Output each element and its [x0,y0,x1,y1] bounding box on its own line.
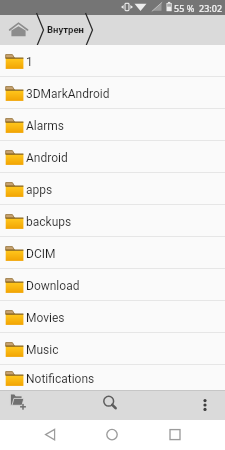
button[interactable]: Android [0,141,225,172]
staticText: 3DMarkAndroid [26,87,110,101]
staticText: Внутрен [47,24,84,35]
button[interactable]: Home [99,420,125,450]
button[interactable]: Back [37,420,63,450]
staticText: 55 % 23:02 [174,2,223,14]
staticText: 1 [26,55,33,69]
button[interactable]: Recent apps [162,420,188,450]
button[interactable]: 1 [0,45,225,76]
button[interactable]: Music [0,333,225,364]
button[interactable]: Search [96,390,124,420]
button[interactable]: More options [192,390,218,420]
staticText: Notifications [26,372,95,386]
button[interactable]: 3DMarkAndroid [0,77,225,108]
staticText: apps [26,183,53,197]
button[interactable]: apps [0,173,225,204]
staticText: backups [26,215,72,229]
staticText: Alarms [26,119,65,133]
button[interactable]: DCIM [0,237,225,268]
button[interactable]: Alarms [0,109,225,140]
staticText: Movies [26,311,65,325]
staticText: Music [26,343,59,357]
button[interactable]: backups [0,205,225,236]
staticText: н [78,24,84,35]
button[interactable]: Movies [0,301,225,332]
button[interactable]: Notifications [0,365,225,390]
staticText: DCIM [26,247,56,261]
staticText: Android [26,151,68,165]
button[interactable]: New folder [3,390,33,420]
staticText: Download [26,279,80,293]
button[interactable]: Download [0,269,225,300]
button[interactable]: Home [0,15,225,45]
